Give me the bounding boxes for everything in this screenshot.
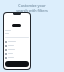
button[interactable] (5, 40, 29, 43)
button[interactable] (5, 56, 29, 59)
button[interactable]: Search (12, 24, 21, 27)
staticText: Customize your (18, 3, 46, 8)
button[interactable] (5, 44, 29, 47)
button[interactable] (5, 48, 29, 51)
button[interactable] (5, 52, 29, 55)
button[interactable] (5, 61, 29, 67)
staticText: search with filters (16, 8, 48, 13)
